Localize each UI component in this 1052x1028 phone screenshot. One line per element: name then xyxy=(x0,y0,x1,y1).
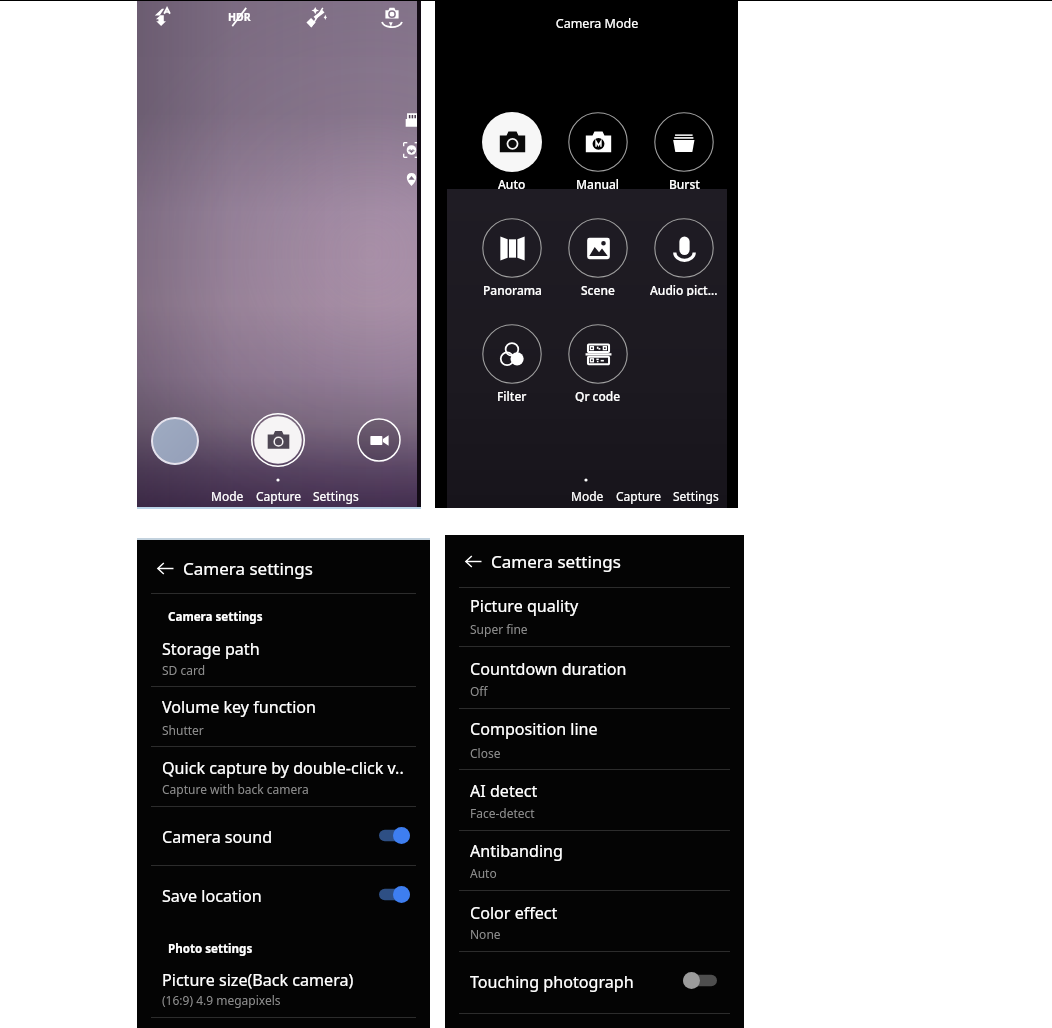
button[interactable]: Panorama xyxy=(469,218,555,296)
button[interactable]: Capture xyxy=(250,488,307,504)
staticText: AI detect xyxy=(470,780,538,802)
staticText: Antibanding xyxy=(470,840,563,862)
button[interactable]: Back xyxy=(152,555,178,581)
button[interactable]: Camera sound xyxy=(137,818,430,854)
staticText: Touching photograph xyxy=(470,971,634,993)
button[interactable]: Settings xyxy=(307,488,365,504)
button[interactable]: Manual xyxy=(555,112,641,190)
button[interactable]: Touching photograph xyxy=(445,963,744,999)
staticText: Super fine xyxy=(470,621,528,637)
button[interactable]: AI detect xyxy=(445,775,744,815)
button[interactable]: Face detection xyxy=(399,138,423,162)
button[interactable]: Filter xyxy=(469,324,555,402)
staticText: Camera settings xyxy=(491,550,621,573)
staticText: Photo settings xyxy=(168,941,253,957)
button[interactable]: Storage path xyxy=(137,633,430,673)
button[interactable]: Flash auto xyxy=(148,3,176,31)
staticText: Settings xyxy=(673,488,719,504)
staticText: Volume key function xyxy=(162,696,317,718)
staticText: Off xyxy=(470,683,488,699)
button[interactable]: Mode xyxy=(205,488,250,504)
staticText: Auto xyxy=(470,865,497,881)
button[interactable]: Location xyxy=(399,167,423,191)
staticText: (16:9) 4.9 megapixels xyxy=(162,992,281,1008)
button[interactable]: SD card xyxy=(399,108,423,132)
staticText: Capture xyxy=(256,488,301,504)
staticText: Mode xyxy=(211,488,244,504)
button[interactable]: Beauty off xyxy=(302,3,330,31)
staticText: Capture xyxy=(616,488,661,504)
button[interactable]: Mode xyxy=(565,488,610,504)
staticText: Face-detect xyxy=(470,805,535,821)
button[interactable]: Capture photo xyxy=(251,413,305,467)
staticText: Camera settings xyxy=(183,557,313,580)
button[interactable]: Antibanding xyxy=(445,835,744,875)
staticText: Countdown duration xyxy=(470,658,627,680)
button[interactable]: Save location xyxy=(137,877,430,913)
staticText: Panorama xyxy=(483,282,542,296)
button[interactable]: Qr code xyxy=(555,324,641,402)
button[interactable]: Switch camera xyxy=(378,3,406,31)
staticText: Camera settings xyxy=(168,609,263,625)
button[interactable]: Volume key function xyxy=(137,691,430,731)
button[interactable]: Auto xyxy=(469,112,555,190)
button[interactable]: Countdown duration xyxy=(445,653,744,693)
button[interactable]: Burst xyxy=(641,112,727,190)
staticText: Quick capture by double-click v.. xyxy=(162,757,404,779)
staticText: Composition line xyxy=(470,718,598,740)
button[interactable]: Color effect xyxy=(445,897,744,937)
button[interactable]: HDR off xyxy=(225,3,253,31)
staticText: Color effect xyxy=(470,902,558,924)
staticText: Picture quality xyxy=(470,595,579,617)
staticText: Burst xyxy=(669,176,700,190)
staticText: Mode xyxy=(571,488,604,504)
staticText: Scene xyxy=(581,282,615,296)
staticText: Qr code xyxy=(575,388,621,402)
staticText: Capture with back camera xyxy=(162,781,309,797)
staticText: SD card xyxy=(162,662,206,678)
staticText: Camera sound xyxy=(162,826,273,848)
button[interactable]: Picture size(Back camera) xyxy=(137,964,430,1004)
staticText: Manual xyxy=(576,176,620,190)
staticText: Camera Mode xyxy=(497,15,697,32)
staticText: Storage path xyxy=(162,638,260,660)
button[interactable]: Audio pict… xyxy=(641,218,727,296)
staticText: Settings xyxy=(313,488,359,504)
button[interactable]: Back xyxy=(460,548,486,574)
button[interactable]: Composition line xyxy=(445,713,744,753)
staticText: Save location xyxy=(162,885,262,907)
button[interactable]: Quick capture by double-click v.. xyxy=(137,752,430,792)
staticText: Auto xyxy=(498,176,526,190)
button[interactable]: Scene xyxy=(555,218,641,296)
button[interactable]: Picture quality xyxy=(445,590,744,630)
staticText: Picture size(Back camera) xyxy=(162,969,354,991)
button[interactable]: Record video xyxy=(357,418,401,462)
button[interactable]: Settings xyxy=(667,488,725,504)
staticText: Close xyxy=(470,745,501,761)
staticText: None xyxy=(470,926,501,942)
button[interactable]: Gallery xyxy=(151,417,199,465)
staticText: Audio pict… xyxy=(650,282,718,296)
staticText: Shutter xyxy=(162,722,204,738)
staticText: Filter xyxy=(497,388,527,402)
staticText: HDR xyxy=(228,10,251,24)
button[interactable]: Capture xyxy=(610,488,667,504)
